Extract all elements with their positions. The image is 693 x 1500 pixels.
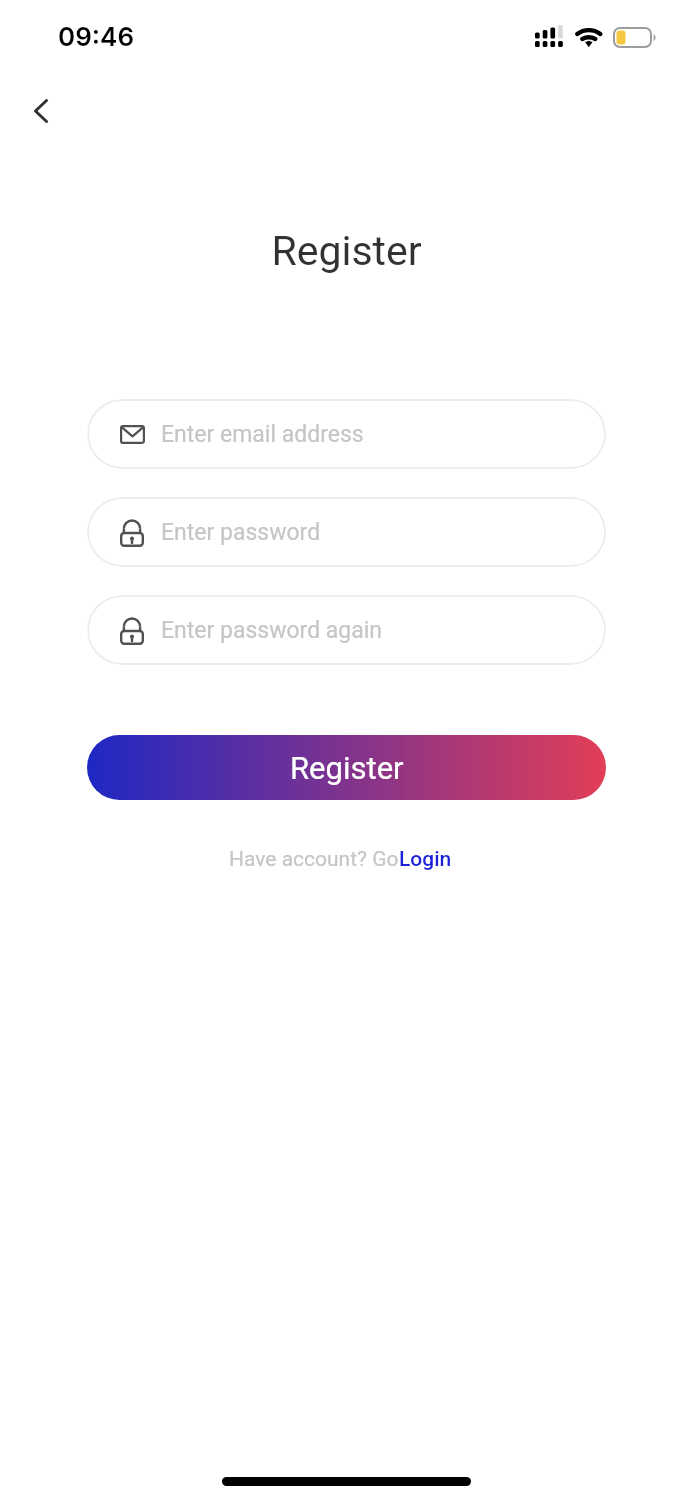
staticText: Login [399,847,452,872]
staticText: 09:46 [58,21,135,52]
staticText: Enter password again [161,617,383,644]
staticText: Enter email address [161,421,364,448]
staticText: Register [290,750,404,786]
button[interactable]: Enter password [87,497,606,567]
staticText: Enter password [161,519,321,546]
button[interactable]: Register [87,735,606,800]
staticText: Have account? Go [229,847,399,872]
button[interactable]: Back [11,87,71,135]
button[interactable]: Enter password again [87,595,606,665]
button[interactable]: Enter email address [87,399,606,469]
button[interactable]: Login [399,847,452,872]
staticText: Register [0,227,693,275]
